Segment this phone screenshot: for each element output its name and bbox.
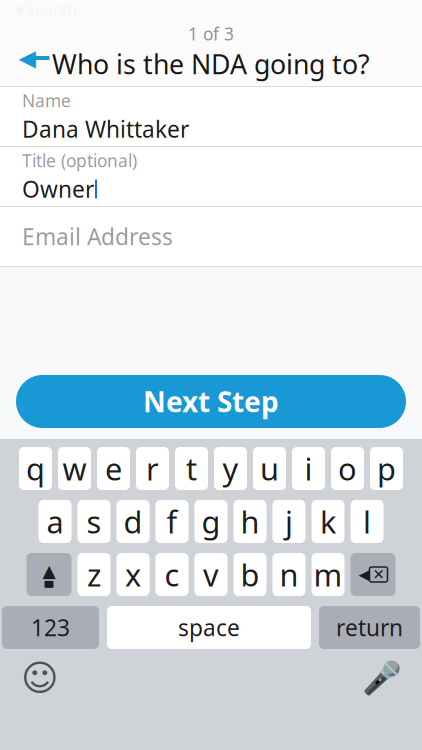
staticText: l: [363, 501, 371, 542]
staticText: Owner: [22, 174, 94, 204]
button[interactable]: Back: [6, 36, 62, 80]
staticText: 123: [31, 612, 70, 642]
staticText: v: [203, 554, 219, 595]
staticText: j: [285, 501, 293, 542]
staticText: f: [166, 501, 177, 542]
staticText: space: [178, 612, 240, 642]
staticText: ◀: [14, 2, 23, 16]
button[interactable]: y: [214, 447, 247, 490]
staticText: d: [123, 501, 142, 542]
button[interactable]: v: [194, 553, 227, 596]
button[interactable]: h: [233, 500, 266, 543]
staticText: ◀: [358, 566, 369, 583]
button[interactable]: j: [272, 500, 305, 543]
staticText: y: [222, 448, 238, 489]
staticText: g: [201, 501, 220, 542]
staticText: p: [377, 448, 396, 489]
staticText: h: [240, 501, 259, 542]
staticText: u: [260, 448, 279, 489]
button[interactable]: t: [175, 447, 208, 490]
button[interactable]: n: [272, 553, 305, 596]
staticText: Next Step: [143, 383, 279, 420]
button[interactable]: x: [116, 553, 149, 596]
staticText: Email Address: [22, 221, 173, 251]
staticText: w: [62, 448, 86, 489]
button[interactable]: Dictation: [356, 655, 408, 701]
button[interactable]: e: [97, 447, 130, 490]
staticText: k: [320, 501, 336, 542]
staticText: ✕: [372, 566, 384, 583]
button[interactable]: m: [311, 553, 344, 596]
button[interactable]: p: [370, 447, 403, 490]
button[interactable]: l: [350, 500, 383, 543]
staticText: t: [186, 448, 197, 489]
button[interactable]: b: [233, 553, 266, 596]
staticText: r: [146, 448, 159, 489]
staticText: e: [105, 448, 122, 489]
staticText: b: [240, 554, 259, 595]
button[interactable]: d: [116, 500, 149, 543]
button[interactable]: a: [38, 500, 71, 543]
staticText: Who is the NDA going to?: [52, 46, 370, 82]
staticText: 1 of 3: [188, 22, 234, 45]
staticText: ▲: [42, 561, 55, 581]
button[interactable]: w: [58, 447, 91, 490]
staticText: a: [46, 501, 63, 542]
button[interactable]: Next Step: [16, 375, 406, 428]
button[interactable]: s: [77, 500, 110, 543]
staticText: Dana Whittaker: [22, 114, 189, 144]
staticText: ◀: [18, 45, 35, 71]
staticText: ☺: [21, 658, 59, 698]
staticText: z: [87, 554, 101, 595]
button[interactable]: r: [136, 447, 169, 490]
button[interactable]: i: [292, 447, 325, 490]
staticText: i: [304, 448, 312, 489]
staticText: x: [125, 554, 141, 595]
staticText: s: [86, 501, 101, 542]
button[interactable]: 123: [2, 606, 99, 649]
staticText: Name: [22, 89, 71, 112]
staticText: o: [338, 448, 357, 489]
button[interactable]: q: [19, 447, 52, 490]
staticText: m: [313, 554, 342, 595]
staticText: return: [336, 612, 403, 642]
staticText: n: [279, 554, 298, 595]
button[interactable]: f: [155, 500, 188, 543]
button[interactable]: Emoji: [14, 655, 66, 701]
button[interactable]: u: [253, 447, 286, 490]
staticText: Title (optional): [22, 149, 137, 172]
button[interactable]: g: [194, 500, 227, 543]
button[interactable]: z: [77, 553, 110, 596]
button[interactable]: space: [107, 606, 311, 649]
button[interactable]: Shift: [26, 553, 71, 596]
button[interactable]: k: [311, 500, 344, 543]
button[interactable]: return: [319, 606, 420, 649]
staticText: q: [26, 448, 45, 489]
button[interactable]: c: [155, 553, 188, 596]
button[interactable]: o: [331, 447, 364, 490]
staticText: c: [164, 554, 179, 595]
staticText: 🎤: [362, 660, 402, 696]
button[interactable]: Delete: [350, 553, 395, 596]
